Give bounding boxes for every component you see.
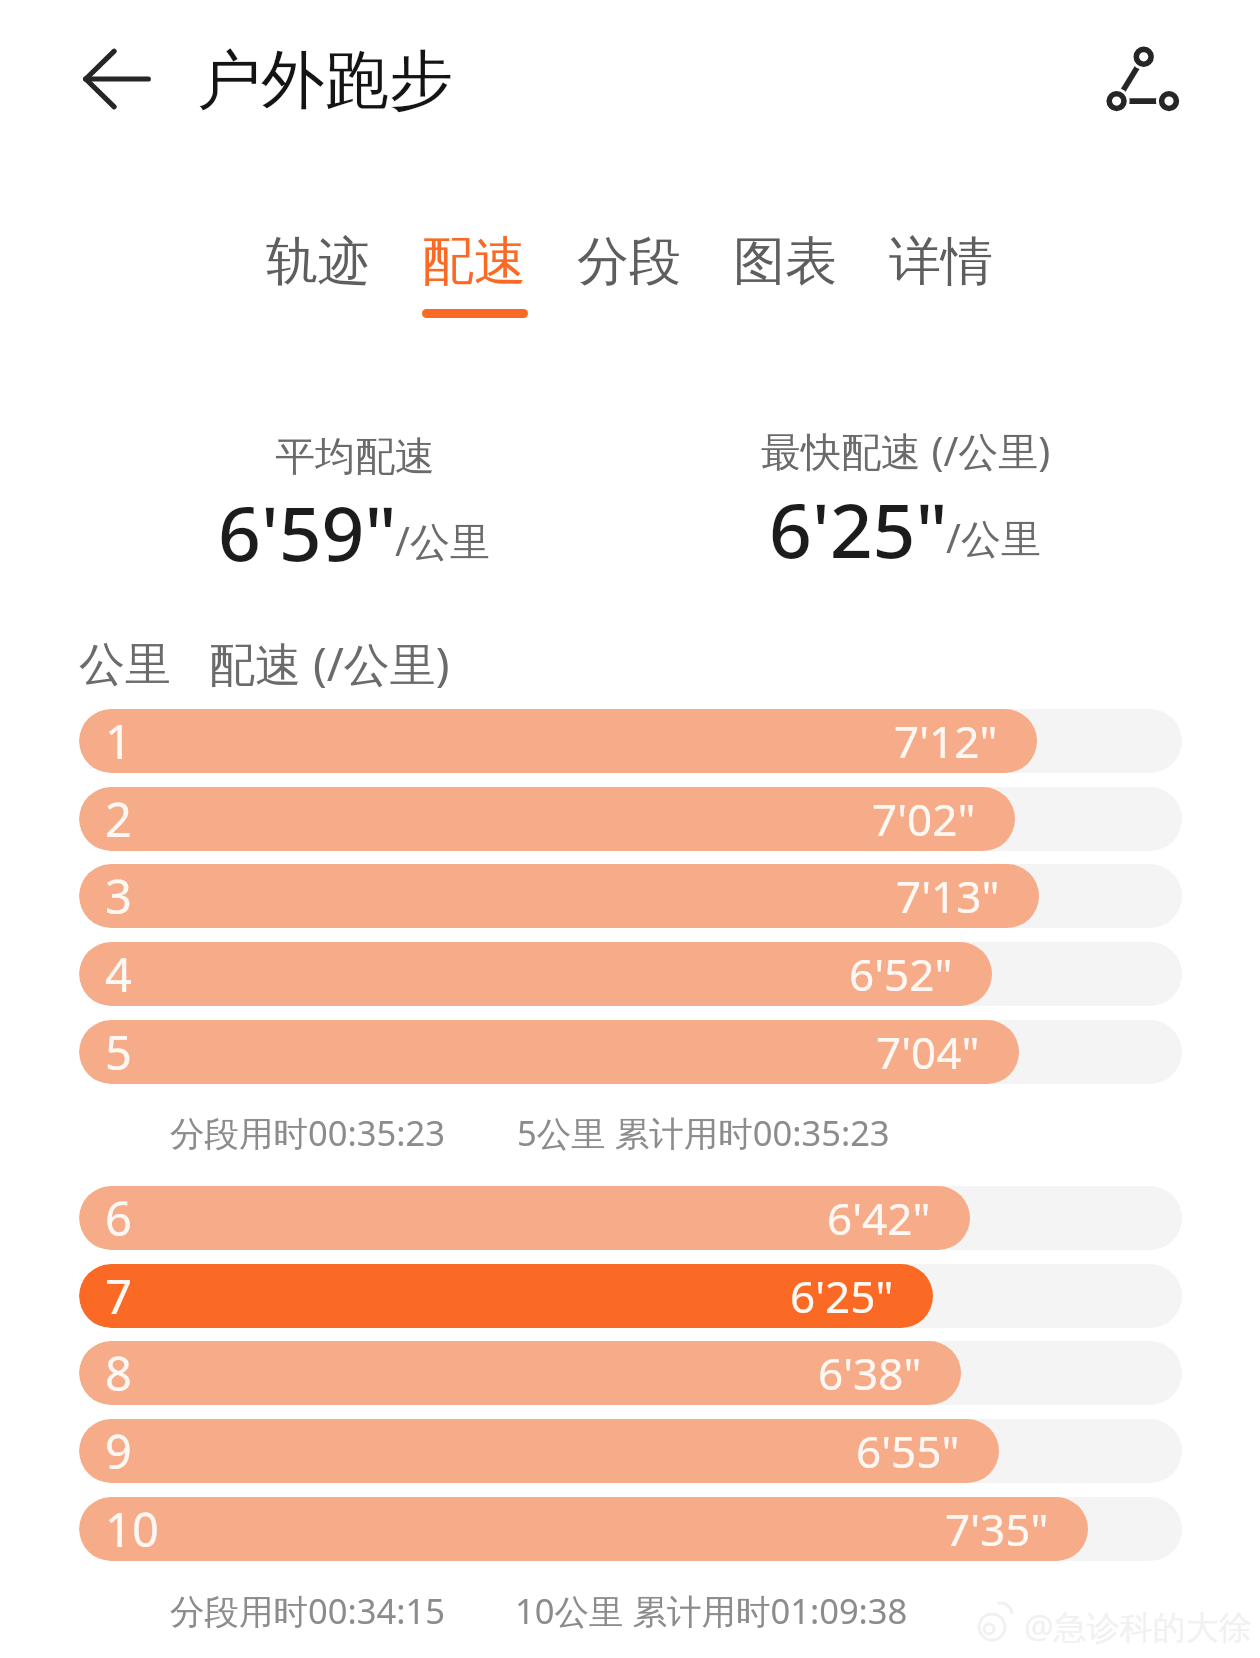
- staticText: 7'04": [876, 1022, 980, 1082]
- staticText: 5公里 累计用时00:35:23: [517, 1109, 890, 1156]
- staticText: 图表: [733, 229, 837, 295]
- button[interactable]: 2: [79, 787, 1182, 851]
- staticText: 7'13": [896, 866, 1000, 926]
- button[interactable]: Back: [77, 39, 157, 119]
- staticText: 8: [105, 1341, 132, 1405]
- staticText: 10: [105, 1497, 159, 1561]
- staticText: 分段用时00:34:15: [170, 1587, 445, 1634]
- staticText: 分段: [577, 229, 681, 295]
- staticText: 6'25": [790, 1266, 894, 1326]
- staticText: 6'42": [827, 1188, 931, 1248]
- staticText: 2: [105, 787, 132, 851]
- staticText: 轨迹: [266, 229, 370, 295]
- staticText: 6'52": [849, 944, 953, 1004]
- staticText: 平均配速: [275, 431, 435, 481]
- staticText: 分段用时00:35:23: [170, 1109, 445, 1156]
- staticText: 6'59": [218, 481, 397, 583]
- staticText: 5: [105, 1020, 132, 1084]
- button[interactable]: 6: [79, 1186, 1182, 1250]
- staticText: 配速 (/公里): [209, 632, 450, 695]
- button[interactable]: 5: [79, 1020, 1182, 1084]
- staticText: 6'25": [769, 478, 948, 580]
- button[interactable]: 1: [79, 709, 1182, 773]
- button[interactable]: Share: [1101, 38, 1193, 130]
- staticText: 7'02": [872, 789, 976, 849]
- staticText: /公里: [946, 510, 1041, 565]
- button[interactable]: 分段: [564, 222, 693, 302]
- staticText: 10公里 累计用时01:09:38: [515, 1587, 908, 1634]
- staticText: 9: [105, 1419, 132, 1483]
- staticText: 3: [105, 864, 132, 928]
- staticText: @急诊科的大徐: [1024, 1604, 1252, 1649]
- button[interactable]: 3: [79, 864, 1182, 928]
- staticText: 4: [105, 942, 132, 1006]
- staticText: 户外跑步: [197, 40, 453, 121]
- staticText: /公里: [395, 513, 490, 568]
- staticText: 6'38": [818, 1343, 922, 1403]
- staticText: 7'12": [894, 711, 998, 771]
- button[interactable]: 8: [79, 1341, 1182, 1405]
- button[interactable]: 9: [79, 1419, 1182, 1483]
- button[interactable]: 详情: [876, 222, 1005, 302]
- button[interactable]: 4: [79, 942, 1182, 1006]
- button[interactable]: 图表: [720, 222, 849, 302]
- button[interactable]: 10: [79, 1497, 1182, 1561]
- button[interactable]: 轨迹: [253, 222, 382, 302]
- staticText: 最快配速 (/公里): [761, 423, 1051, 478]
- staticText: 7'35": [945, 1499, 1049, 1559]
- staticText: 1: [105, 709, 132, 773]
- staticText: 详情: [889, 229, 993, 295]
- staticText: 7: [105, 1264, 132, 1328]
- button[interactable]: 7: [79, 1264, 1182, 1328]
- staticText: 配速: [422, 229, 526, 295]
- staticText: 6'55": [856, 1421, 960, 1481]
- staticText: 6: [105, 1186, 132, 1250]
- button[interactable]: 配速: [409, 222, 538, 302]
- staticText: 公里: [79, 636, 171, 694]
